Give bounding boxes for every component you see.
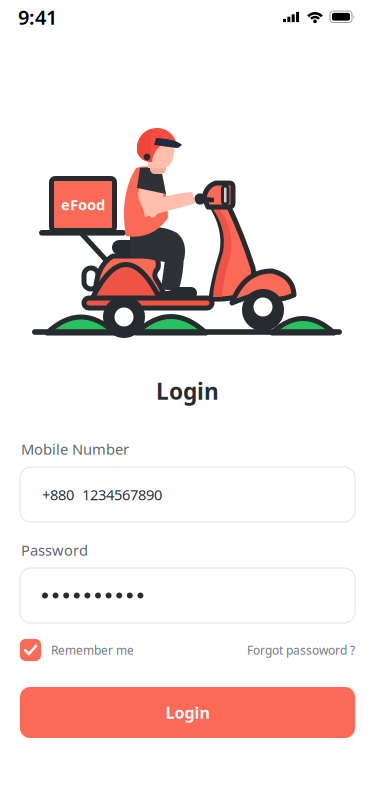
button[interactable]: Forgot passoword ? xyxy=(247,642,355,658)
staticText: 9:41 xyxy=(18,4,57,30)
staticText: eFood xyxy=(61,195,105,214)
button[interactable]: Remember me xyxy=(20,639,134,661)
staticText: Mobile Number xyxy=(21,439,129,459)
staticText: Login xyxy=(165,702,209,723)
staticText: Password xyxy=(21,540,88,560)
button[interactable]: Login xyxy=(20,687,355,738)
staticText: Remember me xyxy=(51,642,134,658)
staticText: +880 1234567890 xyxy=(42,485,162,504)
staticText: Login xyxy=(156,376,219,406)
staticText: Forgot passoword ? xyxy=(247,642,355,658)
